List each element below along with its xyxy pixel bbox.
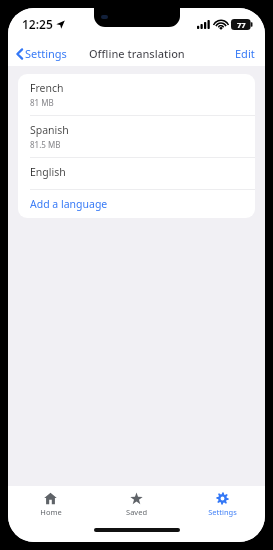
staticText: 12:25 — [22, 16, 53, 32]
staticText: English — [30, 165, 66, 179]
button[interactable]: Settings — [8, 43, 73, 64]
other: Home — [44, 492, 57, 505]
staticText: Offline translation — [89, 46, 185, 61]
staticText: Add a language — [30, 197, 108, 211]
staticText: Settings — [208, 507, 237, 517]
other: Settings — [216, 492, 229, 505]
button[interactable]: Saved — [93, 489, 179, 520]
button[interactable]: Add a language — [18, 190, 255, 218]
staticText: French — [30, 81, 64, 95]
other: Saved — [130, 492, 143, 505]
staticText: Saved — [126, 507, 147, 517]
button[interactable]: Home — [8, 489, 93, 520]
button[interactable]: Settings — [179, 489, 265, 520]
staticText: 77 — [237, 20, 246, 30]
button[interactable]: Edit — [225, 42, 265, 65]
staticText: Spanish — [30, 123, 69, 137]
button[interactable]: French — [18, 74, 255, 115]
staticText: 81 MB — [30, 97, 54, 108]
staticText: Home — [40, 507, 62, 517]
staticText: 81.5 MB — [30, 139, 61, 150]
staticText: Edit — [235, 46, 255, 61]
button[interactable]: Spanish — [18, 116, 255, 157]
staticText: Settings — [25, 46, 67, 61]
button[interactable]: English — [18, 158, 255, 189]
